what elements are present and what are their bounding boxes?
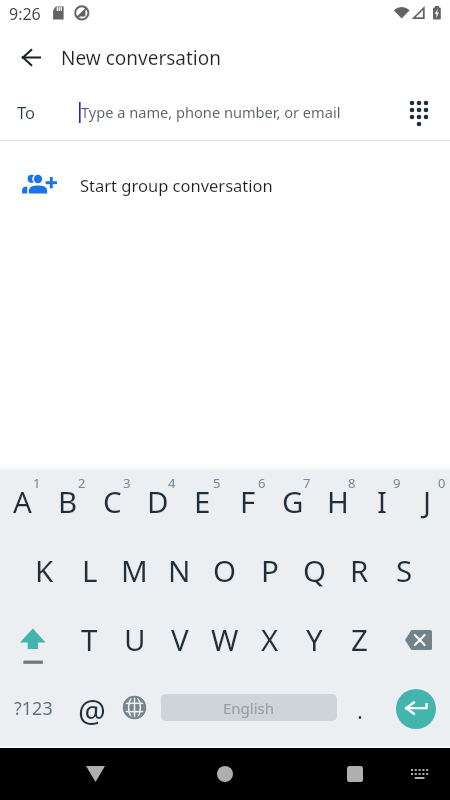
staticText: F xyxy=(240,481,256,521)
button[interactable]: Z xyxy=(337,606,382,675)
staticText: D xyxy=(147,481,169,521)
staticText: B xyxy=(58,481,78,521)
staticText: C xyxy=(103,481,122,521)
button[interactable]: W xyxy=(202,606,247,675)
button[interactable]: O xyxy=(202,537,247,606)
button[interactable]: C xyxy=(90,468,135,537)
button[interactable]: G xyxy=(270,468,315,537)
button[interactable]: ?123 xyxy=(0,675,67,744)
button[interactable]: Recents xyxy=(325,748,385,800)
button[interactable]: M xyxy=(112,537,157,606)
button[interactable]: X xyxy=(247,606,292,675)
button[interactable]: Y xyxy=(292,606,337,675)
staticText: Y xyxy=(306,619,323,659)
staticText: 4 xyxy=(168,474,176,492)
button[interactable]: Start group conversation xyxy=(0,141,450,229)
staticText: N xyxy=(168,550,191,590)
button[interactable]: N xyxy=(157,537,202,606)
staticText: S xyxy=(396,550,413,590)
button[interactable]: Switch keyboard xyxy=(400,748,450,800)
staticText: 9:26 xyxy=(9,3,41,25)
button[interactable]: . xyxy=(337,675,382,744)
button[interactable]: @ xyxy=(67,675,112,744)
staticText: E xyxy=(194,481,211,521)
staticText: J xyxy=(423,481,432,521)
staticText: T xyxy=(81,619,98,659)
staticText: Type a name, phone number, or email xyxy=(81,102,341,122)
button[interactable]: Change language xyxy=(112,675,157,744)
staticText: V xyxy=(171,619,189,659)
staticText: U xyxy=(124,619,146,659)
button[interactable]: D xyxy=(135,468,180,537)
staticText: 5 xyxy=(213,474,221,492)
staticText: O xyxy=(213,550,237,590)
staticText: 3 xyxy=(123,474,131,492)
staticText: 6 xyxy=(258,474,266,492)
button[interactable]: E xyxy=(180,468,225,537)
staticText: Z xyxy=(351,619,368,659)
button[interactable]: F xyxy=(225,468,270,537)
button[interactable]: S xyxy=(382,537,427,606)
button[interactable]: Back xyxy=(65,748,125,800)
button[interactable]: I xyxy=(360,468,405,537)
button[interactable]: A xyxy=(0,468,45,537)
staticText: X xyxy=(261,619,279,659)
button[interactable]: Enter xyxy=(382,675,450,744)
staticText: R xyxy=(350,550,369,590)
button[interactable]: L xyxy=(67,537,112,606)
staticText: M xyxy=(121,550,148,590)
staticText: G xyxy=(282,481,304,521)
staticText: English xyxy=(223,698,275,718)
staticText: I xyxy=(377,481,388,521)
staticText: A xyxy=(13,481,32,521)
staticText: 7 xyxy=(303,474,311,492)
staticText: 0 xyxy=(438,474,446,492)
button[interactable]: R xyxy=(337,537,382,606)
staticText: ?123 xyxy=(14,696,53,721)
button[interactable]: Shift xyxy=(0,606,67,675)
staticText: W xyxy=(211,619,239,659)
button[interactable]: V xyxy=(157,606,202,675)
staticText: . xyxy=(357,695,363,725)
button[interactable]: K xyxy=(22,537,67,606)
staticText: H xyxy=(327,481,349,521)
button[interactable]: Home xyxy=(195,748,255,800)
staticText: 9 xyxy=(393,474,401,492)
button[interactable]: P xyxy=(247,537,292,606)
button[interactable]: T xyxy=(67,606,112,675)
staticText: @ xyxy=(78,689,106,731)
staticText: To xyxy=(17,101,36,123)
staticText: New conversation xyxy=(61,45,221,71)
button[interactable]: J xyxy=(405,468,450,537)
staticText: 8 xyxy=(348,474,356,492)
staticText: P xyxy=(261,550,279,590)
button[interactable]: B xyxy=(45,468,90,537)
staticText: L xyxy=(82,550,98,590)
button[interactable]: H xyxy=(315,468,360,537)
staticText: Start group conversation xyxy=(80,174,273,196)
staticText: K xyxy=(35,550,54,590)
staticText: 1 xyxy=(33,474,41,492)
button[interactable]: English xyxy=(157,675,337,744)
staticText: 2 xyxy=(78,474,86,492)
button[interactable]: Dialpad xyxy=(397,90,441,134)
button[interactable]: Q xyxy=(292,537,337,606)
staticText: Q xyxy=(303,550,327,590)
button[interactable]: Back xyxy=(6,32,54,80)
button[interactable]: U xyxy=(112,606,157,675)
button[interactable]: Backspace xyxy=(382,606,450,675)
